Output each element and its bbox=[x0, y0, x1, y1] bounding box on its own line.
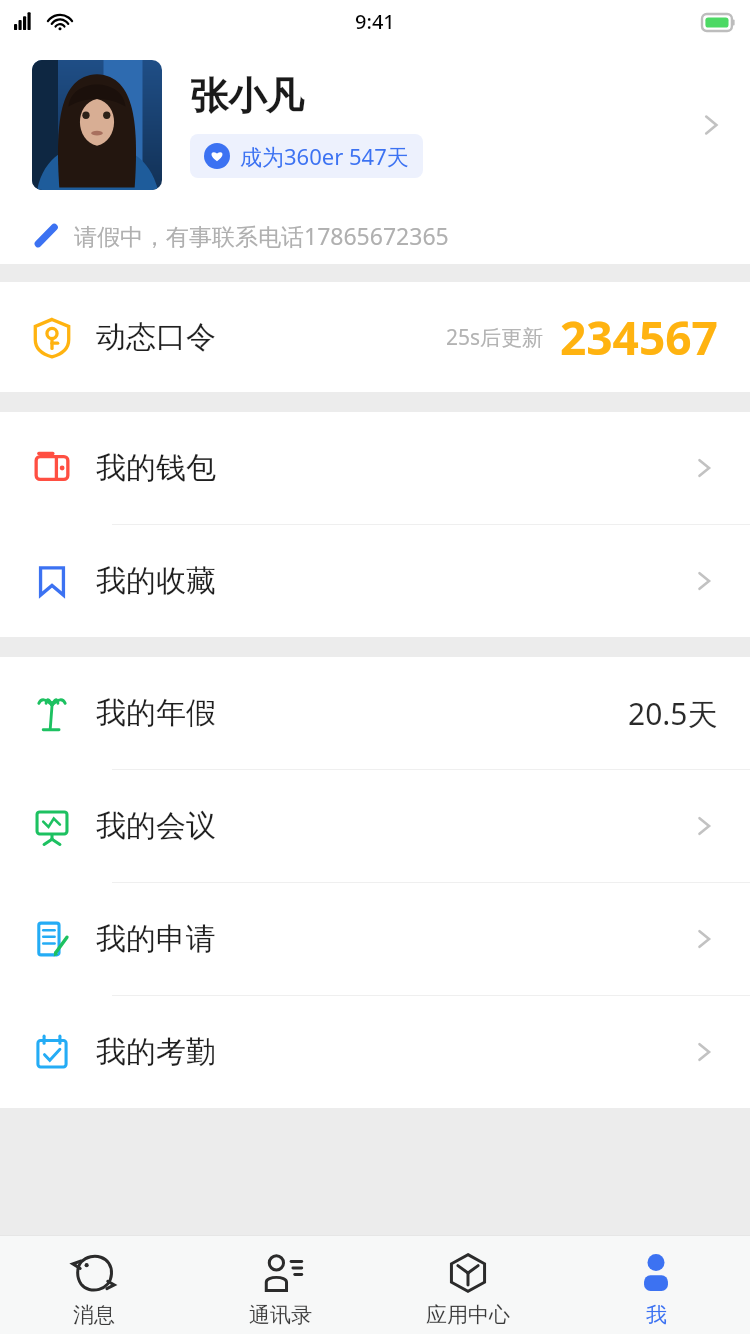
staticText: 张小凡 bbox=[190, 72, 304, 120]
button[interactable]: 我的申请 bbox=[0, 883, 750, 995]
button[interactable]: 我 bbox=[562, 1236, 750, 1334]
staticText: 动态口令 bbox=[96, 318, 216, 356]
staticText: 9:41 bbox=[355, 8, 395, 35]
staticText: 我的申请 bbox=[96, 920, 216, 958]
button[interactable]: 我的收藏 bbox=[0, 525, 750, 637]
staticText: 我的年假 bbox=[96, 694, 216, 732]
button[interactable]: 我的会议 bbox=[0, 770, 750, 882]
staticText: 通讯录 bbox=[249, 1302, 312, 1328]
button[interactable]: 应用中心 bbox=[374, 1236, 562, 1334]
staticText: 我的收藏 bbox=[96, 562, 216, 600]
staticText: 应用中心 bbox=[426, 1302, 510, 1328]
button[interactable]: 我的钱包 bbox=[0, 412, 750, 524]
button[interactable]: 通讯录 bbox=[187, 1236, 374, 1334]
button[interactable]: 我的年假 bbox=[0, 657, 750, 769]
staticText: 25s后更新 bbox=[446, 323, 544, 352]
staticText: 234567 bbox=[560, 306, 718, 369]
staticText: 20.5天 bbox=[628, 693, 718, 734]
button[interactable]: 动态口令 bbox=[0, 282, 750, 392]
staticText: 请假中，有事联系电话17865672365 bbox=[74, 220, 449, 251]
button[interactable]: 请假中，有事联系电话17865672365 bbox=[0, 206, 750, 264]
button[interactable]: 我的考勤 bbox=[0, 996, 750, 1108]
button[interactable]: 张小凡 bbox=[0, 44, 750, 206]
button[interactable]: 消息 bbox=[0, 1236, 187, 1334]
button[interactable]: 成为360er 547天 bbox=[190, 134, 423, 178]
staticText: 我的钱包 bbox=[96, 449, 216, 487]
staticText: 我 bbox=[646, 1302, 667, 1328]
staticText: 成为360er 547天 bbox=[240, 141, 409, 171]
staticText: 消息 bbox=[73, 1302, 115, 1328]
staticText: 我的考勤 bbox=[96, 1033, 216, 1071]
staticText: 我的会议 bbox=[96, 807, 216, 845]
